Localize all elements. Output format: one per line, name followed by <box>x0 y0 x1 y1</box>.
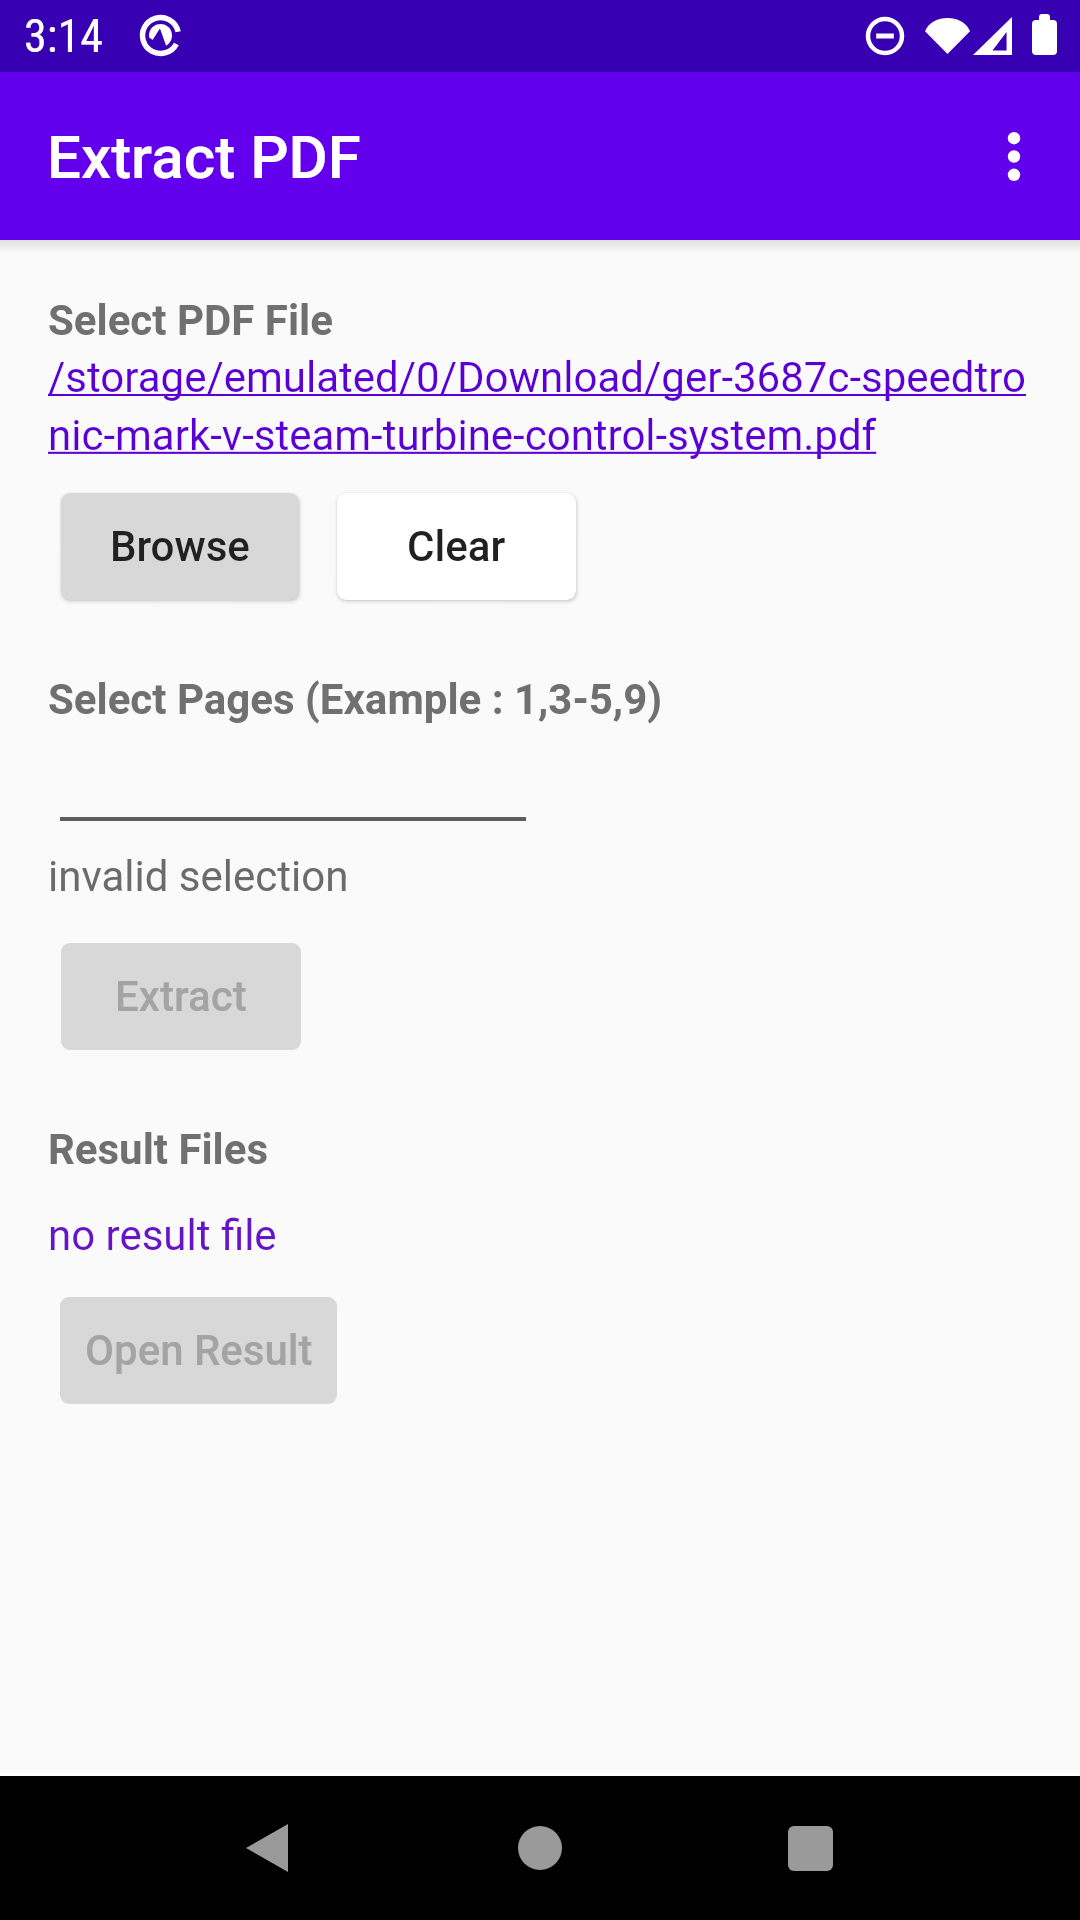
staticText: no result file <box>48 1211 277 1260</box>
staticText: Result Files <box>48 1125 269 1174</box>
button[interactable]: Browse <box>61 493 299 600</box>
button[interactable]: Extract <box>61 943 301 1050</box>
button[interactable]: Open Result <box>60 1297 337 1404</box>
button[interactable]: /storage/emulated/0/Download/ger-3687c-s… <box>48 353 1027 460</box>
staticText: 3:14 <box>24 9 103 63</box>
button[interactable]: More options <box>966 108 1062 204</box>
staticText: Clear <box>407 522 506 571</box>
staticText: Select Pages (Example : 1,3-5,9) <box>48 675 663 724</box>
staticText: Extract PDF <box>47 122 361 192</box>
staticText: /storage/emulated/0/Download/ger-3687c-s… <box>48 353 1027 460</box>
button[interactable]: Home <box>480 1776 600 1920</box>
staticText: invalid selection <box>48 852 349 901</box>
button[interactable]: Back <box>207 1776 327 1920</box>
staticText: Open Result <box>85 1326 313 1375</box>
button[interactable]: Recent apps <box>750 1776 870 1920</box>
staticText: Browse <box>110 522 250 571</box>
staticText: Select PDF File <box>48 296 333 345</box>
button[interactable]: Clear <box>337 493 576 600</box>
staticText: Extract <box>115 972 247 1021</box>
